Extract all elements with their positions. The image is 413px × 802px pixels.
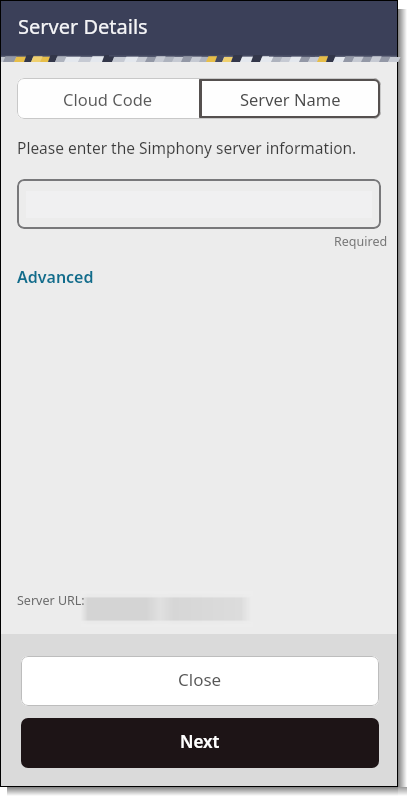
staticText: Close: [178, 668, 222, 691]
staticText: Server URL:: [17, 592, 85, 609]
staticText: Next: [180, 730, 220, 753]
button[interactable]: Next: [21, 718, 379, 768]
button[interactable]: Cloud Code: [17, 78, 199, 119]
button[interactable]: Close: [21, 656, 379, 706]
staticText: Required: [334, 233, 388, 250]
button[interactable]: [17, 179, 381, 229]
staticText: Please enter the Simphony server informa…: [17, 137, 357, 158]
staticText: Server Details: [18, 13, 148, 40]
button[interactable]: Server Name: [199, 78, 381, 119]
button[interactable]: Advanced: [17, 266, 94, 288]
staticText: Server Name: [240, 88, 341, 110]
staticText: Cloud Code: [63, 88, 153, 110]
staticText: Advanced: [17, 266, 94, 288]
